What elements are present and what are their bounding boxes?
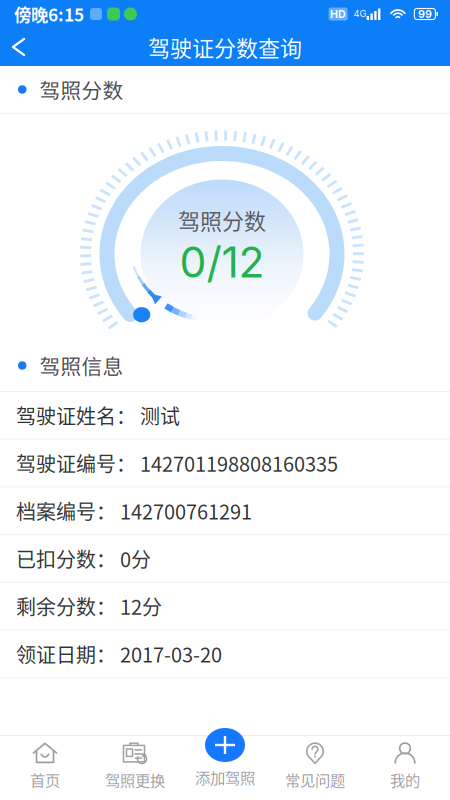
button[interactable]: 驾照更换: [90, 736, 180, 796]
button[interactable]: 返回: [0, 28, 36, 66]
staticText: 驾照分数: [178, 204, 266, 236]
staticText: 常见问题: [285, 768, 345, 791]
staticText: 首页: [30, 768, 60, 791]
button[interactable]: 首页: [0, 736, 90, 796]
staticText: 傍晚6:15: [14, 1, 84, 27]
staticText: 驾驶证分数查询: [148, 31, 302, 63]
staticText: HD: [330, 7, 346, 20]
staticText: 驾照信息: [39, 350, 123, 380]
staticText: 99: [418, 7, 432, 20]
staticText: 驾驶证编号： 142701198808160335: [16, 449, 338, 478]
staticText: 添加驾照: [195, 766, 255, 788]
staticText: 驾照更换: [105, 768, 165, 791]
staticText: 剩余分数： 12分: [16, 592, 162, 621]
staticText: 我的: [390, 768, 420, 791]
staticText: 0/12: [179, 236, 264, 288]
staticText: 领证日期： 2017-03-20: [16, 639, 222, 668]
staticText: 4G: [354, 8, 367, 19]
button[interactable]: 添加驾照: [205, 728, 245, 762]
button[interactable]: 我的: [360, 736, 450, 796]
staticText: 驾照分数: [39, 74, 123, 104]
staticText: 驾驶证姓名： 测试: [16, 401, 180, 430]
button[interactable]: 常见问题: [270, 736, 360, 796]
staticText: 已扣分数： 0分: [16, 544, 151, 573]
staticText: 档案编号： 142700761291: [16, 496, 252, 525]
